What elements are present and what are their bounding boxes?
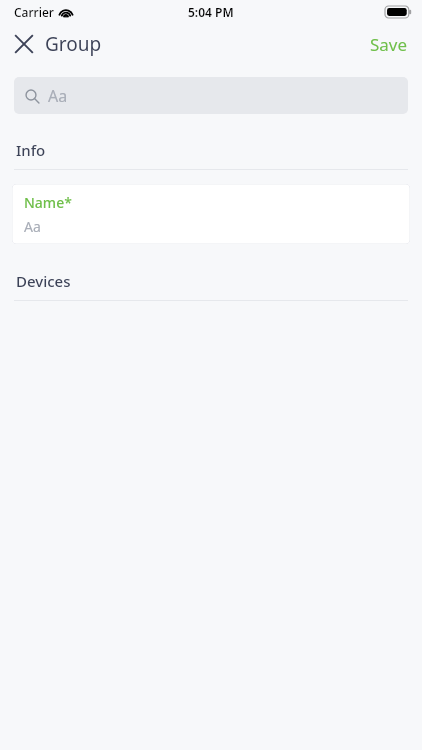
button[interactable]: Aa	[14, 77, 408, 114]
staticText: Aa	[24, 217, 41, 236]
staticText: Info	[16, 140, 46, 160]
staticText: 5:04 PM	[188, 4, 234, 20]
button[interactable]: Save	[356, 27, 422, 62]
button[interactable]: Close	[0, 27, 110, 61]
staticText: Carrier	[14, 4, 54, 20]
button[interactable]: Name*	[12, 184, 410, 244]
staticText: Aa	[48, 85, 68, 107]
other: Close	[12, 32, 36, 56]
staticText: Save	[370, 33, 408, 56]
staticText: Devices	[16, 271, 71, 291]
staticText: Name*	[24, 193, 72, 212]
staticText: Group	[45, 31, 102, 57]
